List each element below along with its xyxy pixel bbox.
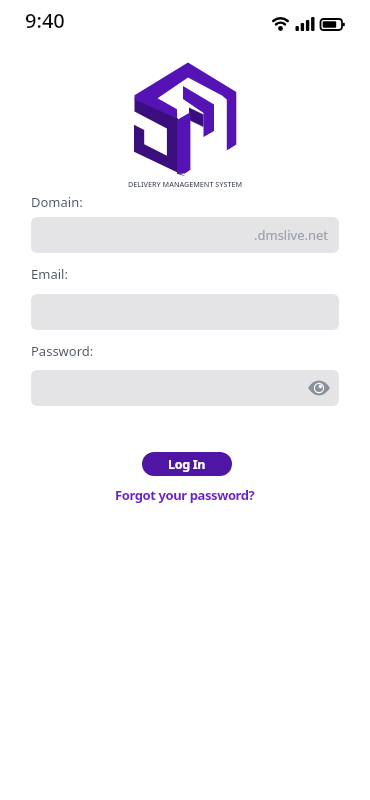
button[interactable] xyxy=(300,370,339,406)
staticText: DELIVERY MANAGEMENT SYSTEM xyxy=(0,179,370,189)
button[interactable] xyxy=(31,370,339,406)
staticText: Domain: xyxy=(31,193,83,211)
staticText: Password: xyxy=(31,342,94,360)
button[interactable]: Forgot your password? xyxy=(0,484,370,506)
button[interactable]: .dmslive.net xyxy=(31,217,339,253)
staticText: 9:40 xyxy=(25,7,65,34)
staticText: Log In xyxy=(168,456,206,473)
button[interactable]: Log In xyxy=(142,452,232,476)
staticText: .dmslive.net xyxy=(254,226,329,244)
staticText: Forgot your password? xyxy=(115,486,255,504)
staticText: Email: xyxy=(31,265,68,283)
